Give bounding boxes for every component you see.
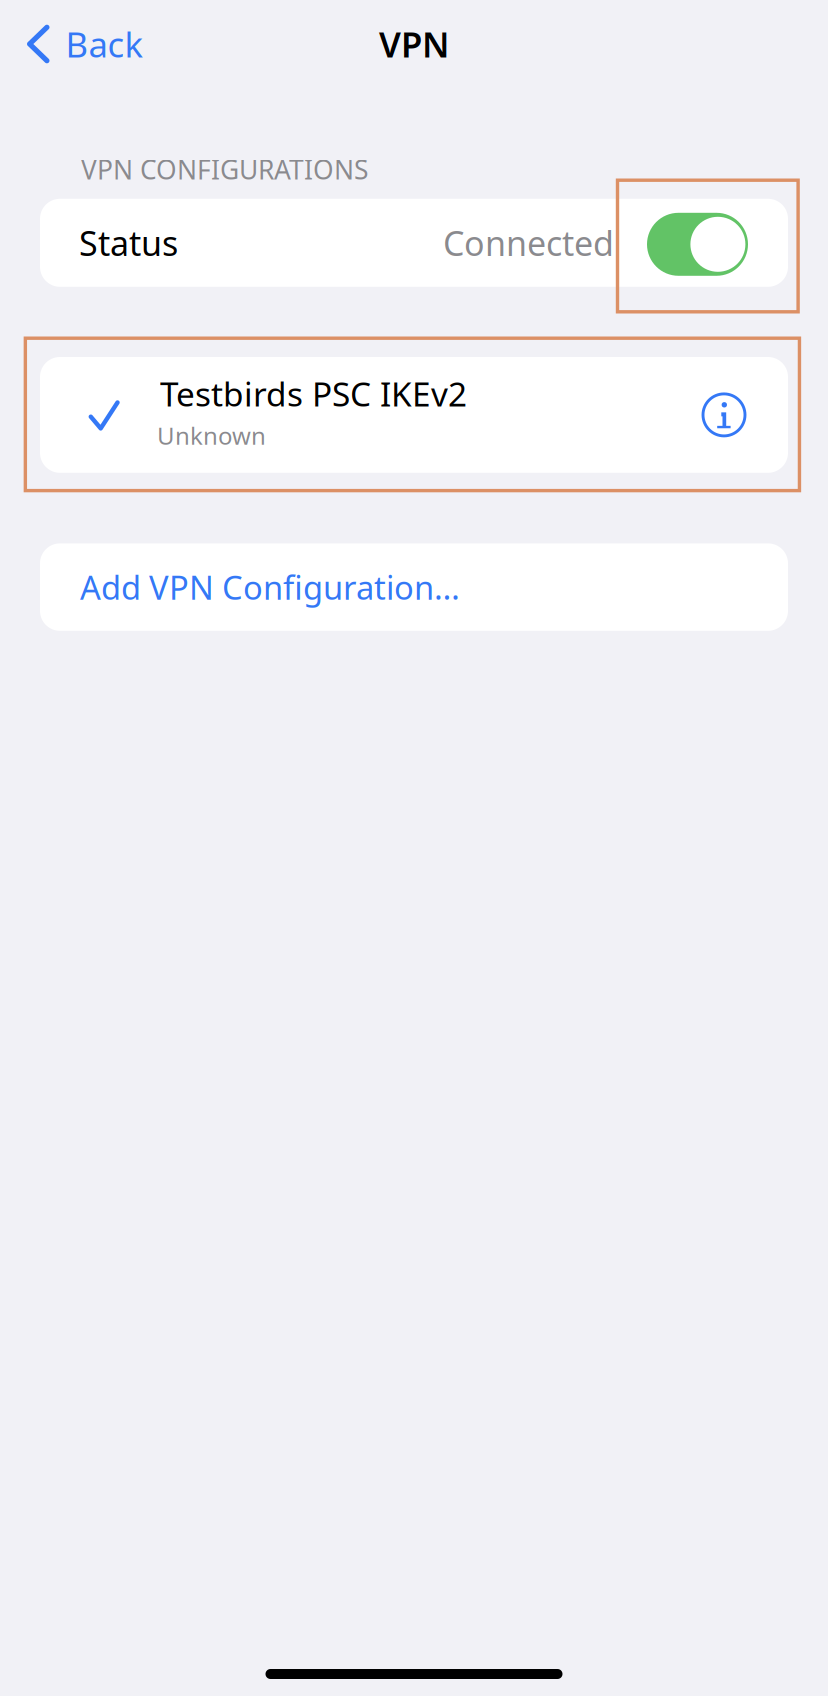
- staticText: Back: [65, 21, 143, 67]
- staticText: Testbirds PSC IKEv2: [160, 371, 467, 416]
- staticText: VPN CONFIGURATIONS: [81, 152, 368, 187]
- staticText: Status: [79, 220, 178, 265]
- staticText: Connected: [443, 220, 614, 265]
- button[interactable]: VPN status toggle, on: [647, 211, 748, 274]
- button[interactable]: Back: [17, 0, 153, 88]
- staticText: VPN: [379, 21, 449, 67]
- button[interactable]: Testbirds PSC IKEv2: [40, 357, 788, 473]
- button[interactable]: Add VPN Configuration…: [40, 543, 788, 631]
- staticText: Unknown: [157, 420, 266, 451]
- staticText: Add VPN Configuration…: [80, 565, 460, 609]
